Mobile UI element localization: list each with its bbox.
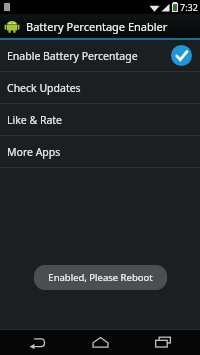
button[interactable]: Back: [11, 329, 63, 355]
button[interactable]: Recent apps: [137, 329, 189, 355]
button[interactable]: Enable Battery Percentage: [0, 40, 200, 71]
button[interactable]: Like & Rate: [0, 104, 200, 135]
staticText: Check Updates: [7, 81, 192, 95]
staticText: Like & Rate: [7, 113, 192, 127]
staticText: Enable Battery Percentage: [7, 49, 171, 63]
staticText: Battery Percentage Enabler: [26, 19, 168, 34]
other: Enabled: [171, 45, 192, 66]
button[interactable]: More Apps: [0, 136, 200, 167]
button[interactable]: Home: [74, 329, 126, 355]
staticText: More Apps: [7, 145, 192, 159]
button[interactable]: Check Updates: [0, 72, 200, 103]
staticText: 7:32: [180, 1, 198, 13]
staticText: Enabled, Please Reboot: [48, 271, 153, 284]
